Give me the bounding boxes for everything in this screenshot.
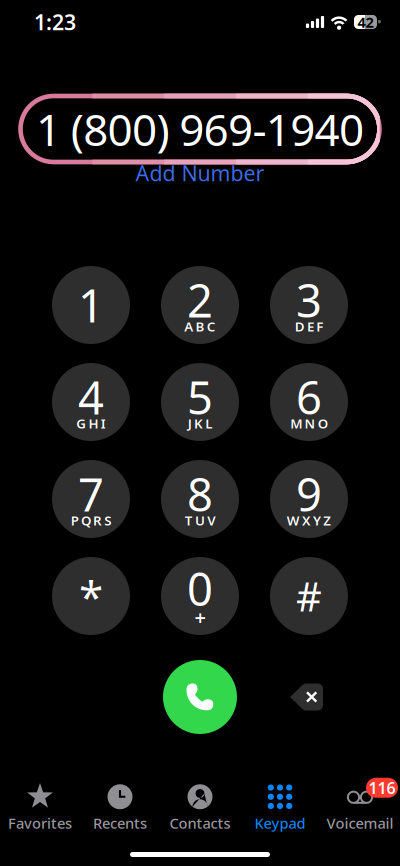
button[interactable]: Call [163, 660, 237, 734]
button[interactable]: 9 [270, 460, 348, 538]
staticText: L [205, 414, 212, 432]
staticText: Contacts [169, 813, 230, 833]
staticText: E [307, 317, 314, 335]
staticText: Voicemail [326, 813, 393, 833]
button[interactable]: 1 (800) 969-1940 [20, 96, 379, 162]
button[interactable]: Contacts [160, 783, 240, 833]
staticText: N [304, 414, 315, 432]
button[interactable]: # [270, 557, 348, 635]
staticText: V [207, 511, 215, 529]
staticText: Add Number [135, 159, 264, 187]
button[interactable]: 8 [161, 460, 239, 538]
button[interactable]: Favorites [0, 783, 80, 833]
button[interactable]: 0 [161, 557, 239, 635]
staticText: 1 (800) 969-1940 [36, 100, 364, 158]
staticText: I [101, 414, 106, 432]
staticText: B [195, 317, 204, 335]
button[interactable]: 116 [320, 783, 400, 833]
staticText: 4 [78, 367, 104, 427]
staticText: S [104, 511, 111, 529]
button[interactable]: 1 [52, 266, 130, 344]
staticText: P [71, 511, 79, 529]
staticText: F [316, 317, 323, 335]
staticText: G [76, 414, 86, 432]
button[interactable]: Add Number [135, 162, 264, 184]
button[interactable]: 5 [161, 363, 239, 441]
staticText: 42 [357, 12, 373, 32]
staticText: 3 [296, 270, 322, 330]
button[interactable]: 4 [52, 363, 130, 441]
staticText: K [194, 414, 203, 432]
staticText: U [195, 511, 205, 529]
button[interactable]: Delete [279, 669, 335, 725]
staticText: + [194, 604, 205, 631]
staticText: 0 [187, 558, 213, 619]
staticText: 5 [187, 367, 213, 427]
staticText: M [290, 414, 302, 432]
staticText: 8 [187, 464, 213, 524]
staticText: X [302, 511, 311, 529]
staticText: Y [313, 511, 321, 529]
staticText: Z [323, 511, 331, 529]
button[interactable]: 2 [161, 266, 239, 344]
button[interactable]: Keypad [240, 783, 320, 833]
staticText: D [295, 317, 305, 335]
staticText: 1 [78, 275, 104, 335]
button[interactable]: 7 [52, 460, 130, 538]
staticText: C [207, 317, 216, 335]
button[interactable]: 3 [270, 266, 348, 344]
staticText: * [79, 567, 103, 625]
staticText: Q [81, 511, 91, 529]
staticText: 6 [296, 367, 322, 427]
staticText: H [88, 414, 98, 432]
button[interactable]: Recents [80, 783, 160, 833]
button[interactable]: 6 [270, 363, 348, 441]
staticText: Recents [93, 813, 147, 833]
staticText: Favorites [8, 813, 72, 833]
button[interactable]: * [52, 557, 130, 635]
staticText: W [287, 511, 300, 529]
staticText: 1:23 [34, 8, 76, 36]
staticText: T [185, 511, 193, 529]
staticText: 7 [78, 464, 104, 524]
staticText: J [188, 414, 192, 432]
staticText: O [318, 414, 328, 432]
staticText: 116 [368, 777, 395, 798]
staticText: A [184, 317, 193, 335]
staticText: 2 [187, 270, 213, 330]
staticText: Keypad [254, 813, 305, 833]
staticText: # [296, 569, 322, 622]
staticText: 9 [296, 464, 322, 524]
staticText: R [93, 511, 102, 529]
